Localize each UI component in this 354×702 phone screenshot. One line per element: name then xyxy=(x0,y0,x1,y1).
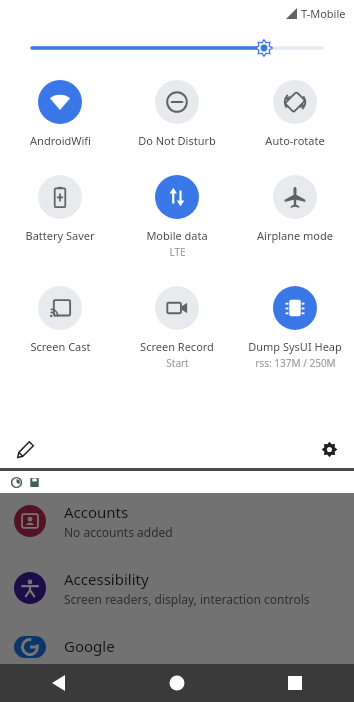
button[interactable]: Accessibility xyxy=(0,563,354,613)
staticText: Screen Cast xyxy=(30,339,91,354)
button[interactable]: Screen Cast xyxy=(2,284,118,356)
staticText: LTE xyxy=(169,245,186,259)
staticText: Accessibility xyxy=(64,569,149,589)
button[interactable]: Mobile data xyxy=(119,173,235,261)
button[interactable]: Screen Record xyxy=(119,284,235,372)
button[interactable]: Edit tiles xyxy=(10,434,40,464)
button[interactable]: Recents xyxy=(236,664,354,702)
staticText: Do Not Disturb xyxy=(138,133,216,148)
staticText: Auto-rotate xyxy=(265,133,325,148)
button[interactable]: Home xyxy=(118,664,236,702)
staticText: Airplane mode xyxy=(257,228,333,243)
staticText: Mobile data xyxy=(146,228,208,243)
staticText: T-Mobile xyxy=(301,6,346,21)
staticText: No accounts added xyxy=(64,524,173,540)
staticText: Google xyxy=(64,636,115,656)
button[interactable]: Auto rotate xyxy=(237,78,353,150)
staticText: Battery Saver xyxy=(25,228,95,243)
button[interactable]: Airplane mode xyxy=(237,173,353,245)
staticText: Accounts xyxy=(64,502,129,522)
button[interactable]: Dump SysUI Heap xyxy=(237,284,353,372)
button[interactable]: Settings xyxy=(314,434,344,464)
button[interactable]: Google xyxy=(0,630,354,664)
button[interactable]: Battery Saver xyxy=(2,173,118,245)
staticText: Screen readers, display, interaction con… xyxy=(64,591,310,607)
button[interactable]: Brightness xyxy=(0,26,354,70)
staticText: rss: 137M / 250M xyxy=(255,356,336,370)
staticText: Start xyxy=(166,356,189,370)
staticText: AndroidWifi xyxy=(30,133,91,148)
button[interactable]: Wi-Fi xyxy=(2,78,118,150)
button[interactable]: Accounts xyxy=(0,496,354,546)
staticText: Screen Record xyxy=(140,339,214,354)
staticText: Dump SysUI Heap xyxy=(248,339,342,354)
button[interactable]: Back xyxy=(0,664,118,702)
button[interactable]: Do Not Disturb xyxy=(119,78,235,150)
